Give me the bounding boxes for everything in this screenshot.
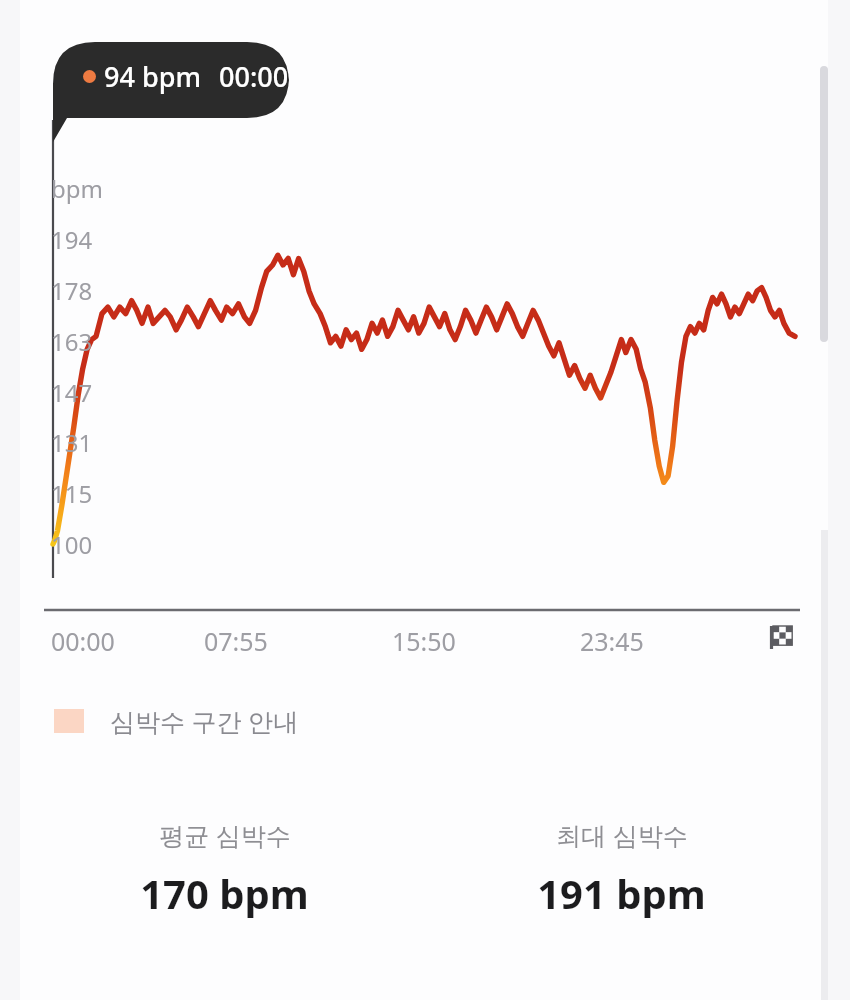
staticText: 194 [51,223,93,256]
staticText: 15:50 [392,624,456,658]
staticText: 00:00 [51,624,115,658]
staticText: 163 [51,325,93,358]
staticText: 178 [51,274,93,307]
staticText: 최대 심박수 [556,818,688,852]
button[interactable]: 평균 심박수 [26,818,423,920]
staticText: 심박수 구간 안내 [110,704,299,738]
staticText: 평균 심박수 [159,818,291,852]
staticText: 191 bpm [537,866,706,920]
staticText: 23:45 [580,624,644,658]
button[interactable]: 심박수 구간 안내 [48,698,305,744]
staticText: 131 [51,426,93,459]
staticText: bpm [51,172,103,205]
staticText: 147 [51,376,93,409]
button[interactable]: Heart rate chart [44,140,804,610]
staticText: 100 [51,528,93,561]
staticText: 07:55 [204,624,268,658]
button[interactable]: 94 bpm [83,58,289,95]
staticText: 115 [51,477,93,510]
staticText: 170 bpm [140,866,309,920]
staticText: 00:00 [219,58,289,95]
button[interactable]: 최대 심박수 [423,818,820,920]
staticText: 94 bpm [104,58,201,95]
